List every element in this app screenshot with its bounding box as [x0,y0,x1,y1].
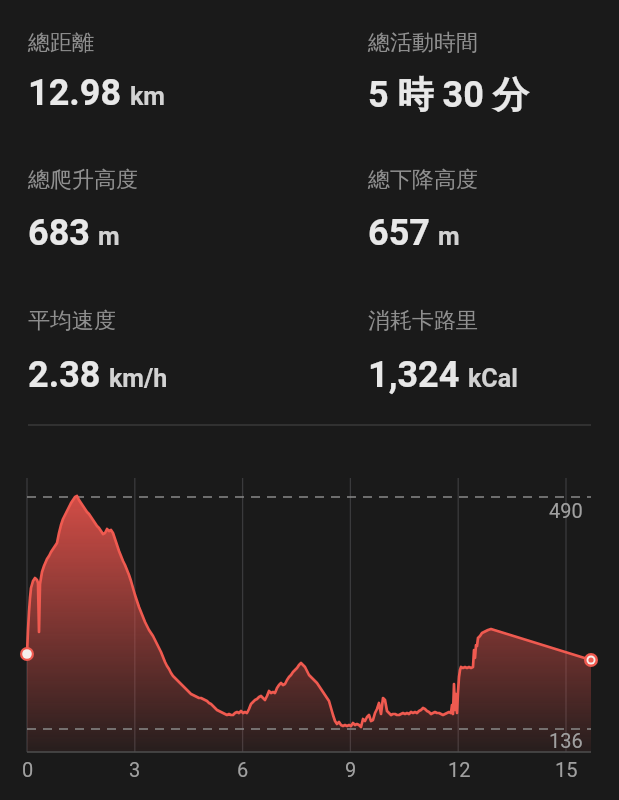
staticText: 15 [555,758,578,781]
staticText: kCal [468,364,518,393]
staticText: 657 [368,212,430,254]
staticText: 2.38 [28,354,101,396]
staticText: m [438,222,460,251]
staticText: 總活動時間 [368,29,478,57]
staticText: km [130,82,165,111]
staticText: 5 時 30 分 [368,72,529,117]
staticText: 平均速度 [28,307,116,335]
staticText: km/h [109,364,168,393]
staticText: 9 [345,758,357,781]
staticText: 1,324 [368,354,460,396]
staticText: 3 [129,758,141,781]
staticText: 總距離 [28,29,94,57]
staticText: 683 [28,212,90,254]
staticText: 6 [237,758,249,781]
staticText: 0 [22,758,34,781]
staticText: 總下降高度 [368,166,478,194]
staticText: 消耗卡路里 [368,307,478,335]
staticText: m [98,222,120,251]
staticText: 490 [549,499,583,522]
staticText: 12.98 [28,72,122,114]
staticText: 總爬升高度 [28,166,138,194]
staticText: 136 [549,729,583,752]
staticText: 12 [448,758,471,781]
